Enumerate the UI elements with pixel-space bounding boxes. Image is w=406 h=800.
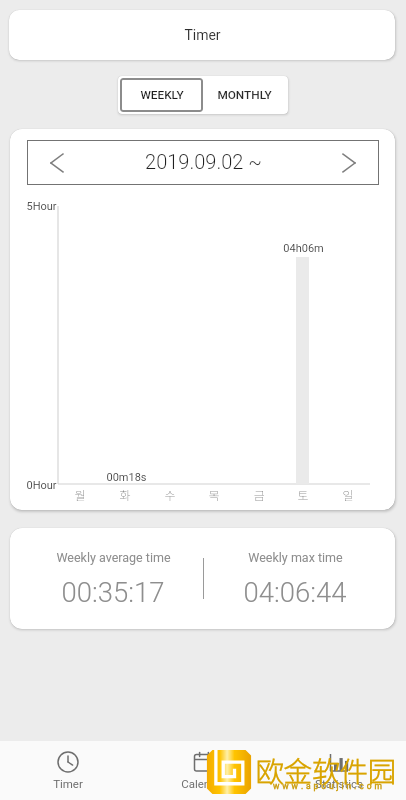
- button[interactable]: Statistics: [271, 741, 406, 800]
- button[interactable]: Timer: [9, 10, 395, 60]
- staticText: 欧金软件园: [256, 750, 397, 791]
- staticText: 0Hour: [26, 479, 57, 492]
- staticText: 5Hour: [26, 200, 57, 213]
- staticText: 수: [164, 486, 176, 503]
- staticText: 04h06m: [283, 242, 324, 255]
- button[interactable]: Weekly average time: [33, 528, 193, 629]
- staticText: 04:06:44: [243, 576, 347, 608]
- button[interactable]: Next week: [326, 141, 372, 184]
- staticText: 00m18s: [106, 471, 147, 484]
- button[interactable]: Previous week: [34, 141, 80, 184]
- staticText: Calendar: [181, 777, 227, 790]
- button[interactable]: MONTHLY: [203, 78, 286, 112]
- button[interactable]: Timer: [0, 741, 136, 800]
- staticText: 일: [342, 486, 354, 503]
- staticText: w w w . a p o u j i n . c o m: [273, 781, 383, 791]
- staticText: Timer: [184, 27, 221, 43]
- staticText: Weekly average time: [56, 550, 171, 565]
- staticText: Statistics: [315, 777, 363, 790]
- staticText: WEEKLY: [140, 88, 184, 102]
- staticText: 월: [74, 486, 86, 503]
- staticText: 목: [208, 486, 220, 503]
- staticText: Weekly max time: [248, 550, 343, 565]
- staticText: 00:35:17: [61, 576, 165, 608]
- staticText: 2019.09.02 ~: [145, 150, 262, 173]
- staticText: 화: [119, 486, 131, 503]
- button[interactable]: WEEKLY: [120, 78, 203, 112]
- staticText: MONTHLY: [217, 88, 272, 102]
- button[interactable]: Weekly max time: [215, 528, 375, 629]
- staticText: 금: [253, 486, 265, 503]
- staticText: Timer: [53, 777, 83, 790]
- button[interactable]: Calendar: [136, 741, 271, 800]
- staticText: 토: [297, 486, 309, 503]
